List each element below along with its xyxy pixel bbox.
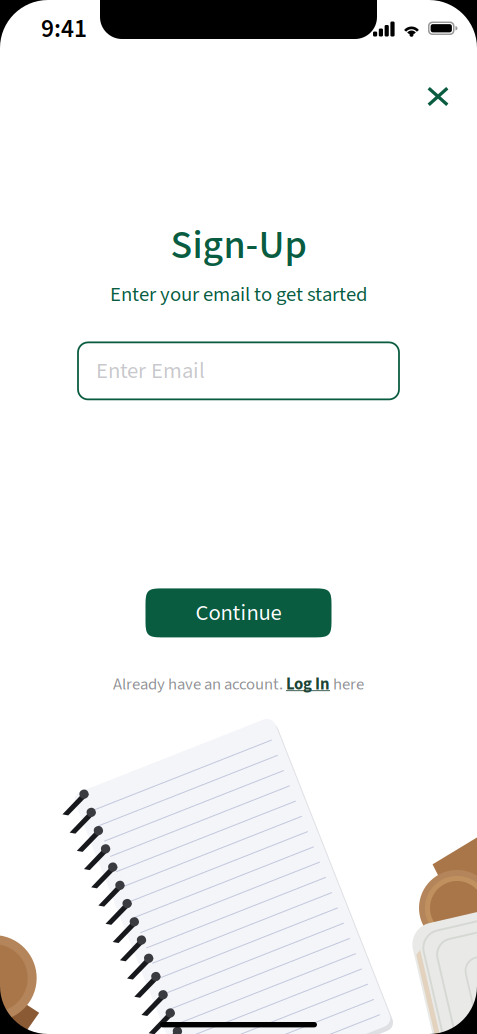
button[interactable]: Enter Email	[78, 342, 399, 399]
staticText: Already have an account.	[113, 672, 286, 696]
staticText: Log In	[286, 672, 330, 696]
staticText: 9:41	[41, 11, 87, 47]
staticText: Continue	[195, 597, 281, 629]
button[interactable]: Continue	[145, 588, 331, 637]
staticText: Enter your email to get started	[110, 280, 367, 309]
staticText: Sign-Up	[170, 217, 306, 274]
button[interactable]: Log In	[286, 672, 330, 696]
button[interactable]: Close	[416, 74, 460, 118]
staticText: Enter Email	[96, 355, 205, 387]
staticText: here	[330, 672, 364, 696]
